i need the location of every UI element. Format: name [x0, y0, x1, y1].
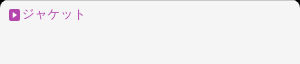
button[interactable]: Play	[9, 9, 20, 21]
button[interactable]: ジャケット	[22, 6, 86, 22]
